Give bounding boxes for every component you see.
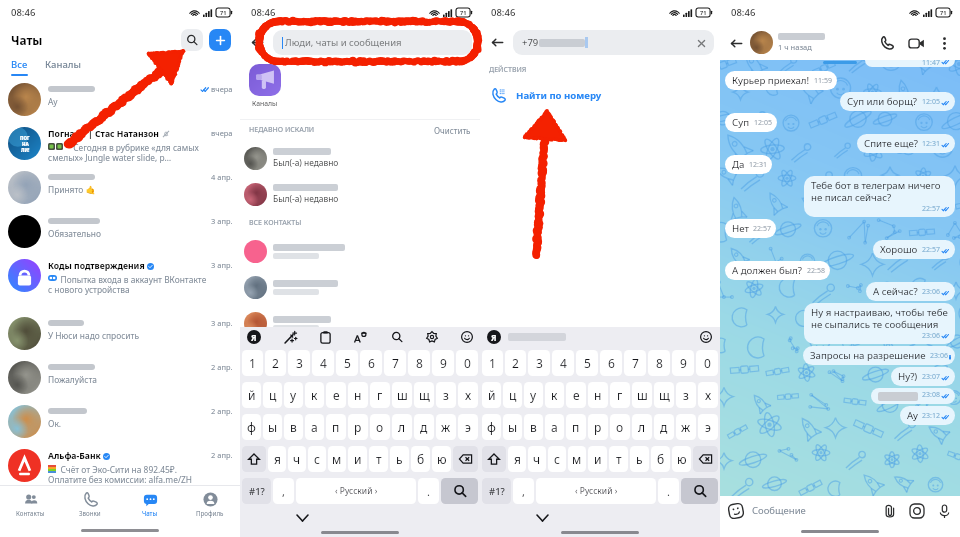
- button[interactable]: т: [369, 446, 388, 472]
- button[interactable]: Очистить: [434, 125, 471, 136]
- button[interactable]: Курьер приехал!: [725, 71, 837, 90]
- button[interactable]: Ок.: [0, 399, 240, 443]
- button[interactable]: ж: [436, 414, 456, 440]
- button[interactable]: ь: [630, 446, 649, 472]
- button[interactable]: 2: [505, 350, 526, 376]
- button[interactable]: л: [392, 414, 412, 440]
- button[interactable]: New chat: [209, 29, 231, 51]
- button[interactable]: Альфа-Банк: [0, 443, 240, 485]
- button[interactable]: Хорошо: [873, 240, 955, 259]
- button[interactable]: ч: [528, 446, 546, 472]
- button[interactable]: А должен был?: [725, 261, 830, 280]
- button[interactable]: А сейчас?: [866, 282, 955, 301]
- button[interactable]: 6: [360, 350, 382, 376]
- button[interactable]: #1?: [482, 478, 511, 504]
- button[interactable]: 8: [648, 350, 670, 376]
- button[interactable]: 9: [672, 350, 694, 376]
- button[interactable]: 23:08: [871, 388, 955, 404]
- button[interactable]: х: [698, 382, 718, 408]
- button[interactable]: м: [568, 446, 586, 472]
- button[interactable]: м: [328, 446, 346, 472]
- button[interactable]: з: [676, 382, 696, 408]
- button[interactable]: в: [524, 414, 543, 440]
- button[interactable]: Был(-а) недавно: [240, 176, 480, 212]
- button[interactable]: 6: [600, 350, 622, 376]
- button[interactable]: ю: [672, 446, 691, 472]
- button[interactable]: с: [548, 446, 566, 472]
- button[interactable]: ш: [392, 382, 412, 408]
- button[interactable]: [242, 446, 266, 472]
- button[interactable]: е: [326, 382, 346, 408]
- button[interactable]: Clear: [694, 36, 708, 50]
- button[interactable]: [240, 233, 480, 269]
- button[interactable]: [240, 341, 480, 377]
- button[interactable]: +79: [513, 30, 714, 55]
- button[interactable]: 3: [288, 350, 310, 376]
- button[interactable]: Звонки: [60, 486, 120, 523]
- button[interactable]: #1?: [242, 478, 271, 504]
- button[interactable]: ч: [288, 446, 306, 472]
- button[interactable]: к: [545, 382, 564, 408]
- button[interactable]: й: [242, 382, 261, 408]
- button[interactable]: щ: [654, 382, 674, 408]
- button[interactable]: .: [658, 478, 679, 504]
- button[interactable]: к: [305, 382, 324, 408]
- button[interactable]: More options: [935, 34, 953, 52]
- button[interactable]: ,: [273, 478, 294, 504]
- button[interactable]: Запросы на разрешение: [803, 346, 955, 365]
- button[interactable]: Тебе бот в телеграм ничего не писал сейч…: [804, 176, 955, 217]
- button[interactable]: х: [458, 382, 478, 408]
- button[interactable]: 2: [265, 350, 286, 376]
- button[interactable]: г: [370, 382, 390, 408]
- button[interactable]: Каналы: [45, 55, 81, 71]
- button[interactable]: э: [458, 414, 478, 440]
- button[interactable]: д: [414, 414, 434, 440]
- button[interactable]: п: [326, 414, 346, 440]
- button[interactable]: а: [305, 414, 324, 440]
- button[interactable]: Каналы: [249, 64, 281, 108]
- button[interactable]: [240, 269, 480, 305]
- button[interactable]: Чаты: [120, 486, 180, 523]
- button[interactable]: .: [418, 478, 439, 504]
- button[interactable]: ю: [432, 446, 451, 472]
- button[interactable]: [681, 478, 718, 504]
- button[interactable]: у: [284, 382, 303, 408]
- button[interactable]: ф: [242, 414, 261, 440]
- button[interactable]: Stickers: [727, 502, 745, 520]
- button[interactable]: 1: [242, 350, 263, 376]
- button[interactable]: Search: [181, 29, 203, 51]
- button[interactable]: Контакты: [0, 486, 60, 523]
- button[interactable]: У Нюси надо спросить: [0, 311, 240, 355]
- button[interactable]: Back: [246, 31, 268, 53]
- button[interactable]: в: [284, 414, 303, 440]
- button[interactable]: б: [651, 446, 670, 472]
- button[interactable]: Принято 🤙: [0, 165, 240, 209]
- button[interactable]: г: [610, 382, 630, 408]
- button[interactable]: Back: [726, 33, 746, 53]
- button[interactable]: ж: [676, 414, 696, 440]
- button[interactable]: р: [348, 414, 368, 440]
- button[interactable]: 4: [552, 350, 574, 376]
- button[interactable]: я: [508, 446, 526, 472]
- button[interactable]: Attach: [881, 502, 899, 520]
- button[interactable]: ш: [632, 382, 652, 408]
- button[interactable]: 4: [312, 350, 334, 376]
- button[interactable]: Video call: [906, 33, 926, 53]
- button[interactable]: [453, 446, 478, 472]
- button[interactable]: 5: [336, 350, 358, 376]
- button[interactable]: Люди, чаты и сообщения: [273, 30, 472, 55]
- button[interactable]: Да: [725, 155, 772, 174]
- button[interactable]: Все: [11, 55, 28, 76]
- button[interactable]: 8: [408, 350, 430, 376]
- button[interactable]: у: [524, 382, 543, 408]
- button[interactable]: о: [610, 414, 630, 440]
- button[interactable]: ф: [482, 414, 501, 440]
- button[interactable]: 3: [528, 350, 550, 376]
- button[interactable]: Спите еще?: [857, 134, 955, 153]
- button[interactable]: д: [654, 414, 674, 440]
- button[interactable]: Нет: [725, 219, 776, 238]
- button[interactable]: ц: [503, 382, 522, 408]
- button[interactable]: и: [348, 446, 367, 472]
- button[interactable]: р: [588, 414, 608, 440]
- button[interactable]: [482, 446, 506, 472]
